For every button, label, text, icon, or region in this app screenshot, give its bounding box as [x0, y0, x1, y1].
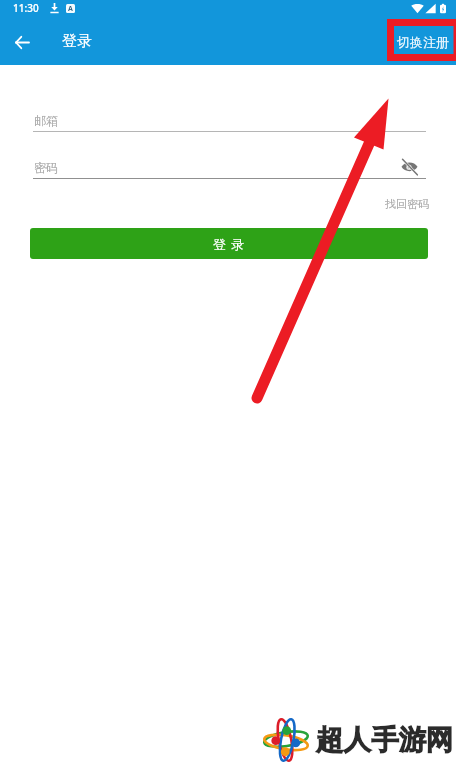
staticText: 登录: [62, 32, 92, 51]
staticText: 11:30: [13, 1, 39, 15]
button[interactable]: Show password: [398, 156, 420, 178]
staticText: 切换注册: [397, 34, 449, 50]
button[interactable]: 登 录: [30, 228, 428, 259]
button[interactable]: Back: [0, 20, 44, 64]
staticText: 超人手游网: [316, 723, 454, 758]
button[interactable]: 邮箱: [33, 104, 426, 132]
button[interactable]: 密码: [33, 151, 426, 179]
staticText: 登 录: [213, 235, 245, 253]
staticText: 邮箱: [34, 113, 58, 128]
button[interactable]: 找回密码: [382, 194, 432, 214]
staticText: A: [68, 4, 73, 13]
staticText: 找回密码: [385, 197, 429, 211]
button[interactable]: 切换注册: [393, 28, 453, 56]
staticText: 密码: [34, 160, 58, 175]
